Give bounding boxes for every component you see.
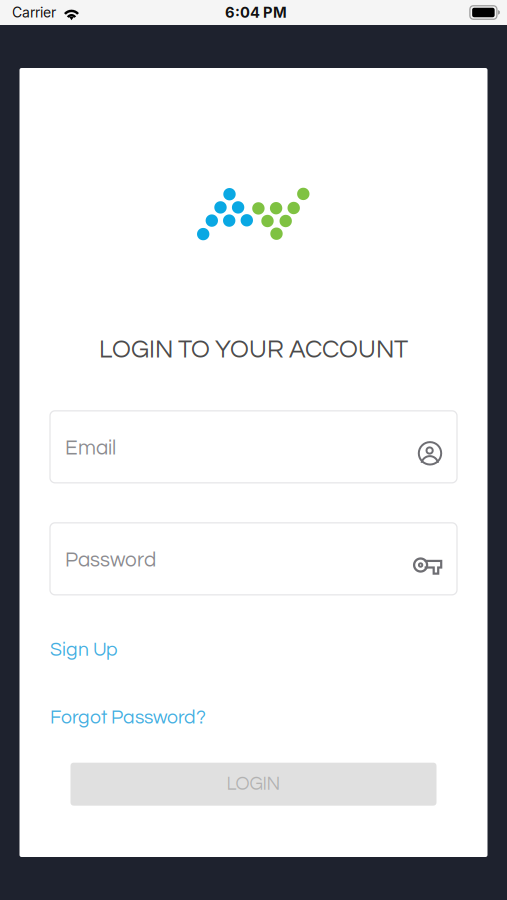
button[interactable]: Sign Up [50, 640, 118, 660]
staticText: LOGIN [226, 774, 280, 794]
staticText: 6:04 PM [225, 4, 287, 21]
staticText: Email [65, 438, 116, 459]
button[interactable]: LOGIN [70, 763, 436, 806]
staticText: Forgot Password? [50, 708, 206, 728]
staticText: Password [65, 550, 156, 571]
button[interactable]: Password [50, 523, 457, 595]
staticText: Carrier [12, 4, 56, 21]
button[interactable]: Forgot Password? [50, 708, 206, 728]
staticText: LOGIN TO YOUR ACCOUNT [99, 337, 408, 363]
staticText: Sign Up [50, 640, 118, 660]
button[interactable]: Email [50, 411, 457, 483]
